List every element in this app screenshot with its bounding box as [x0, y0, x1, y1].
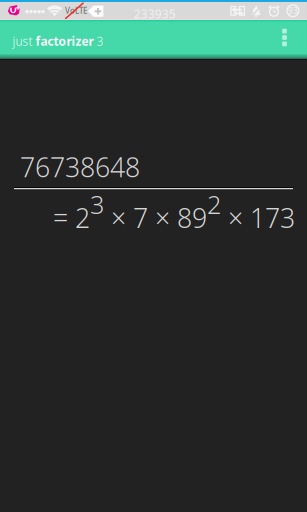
staticText: VoLTE — [65, 5, 87, 16]
staticText: just factorizer 3 — [13, 33, 104, 49]
button[interactable]: More options — [270, 20, 299, 54]
staticText: 76738648 — [20, 149, 140, 185]
staticText: 93 — [288, 5, 298, 16]
staticText: 233935 — [134, 6, 176, 22]
staticText: = 23 × 7 × 892 × 173 — [53, 187, 295, 235]
